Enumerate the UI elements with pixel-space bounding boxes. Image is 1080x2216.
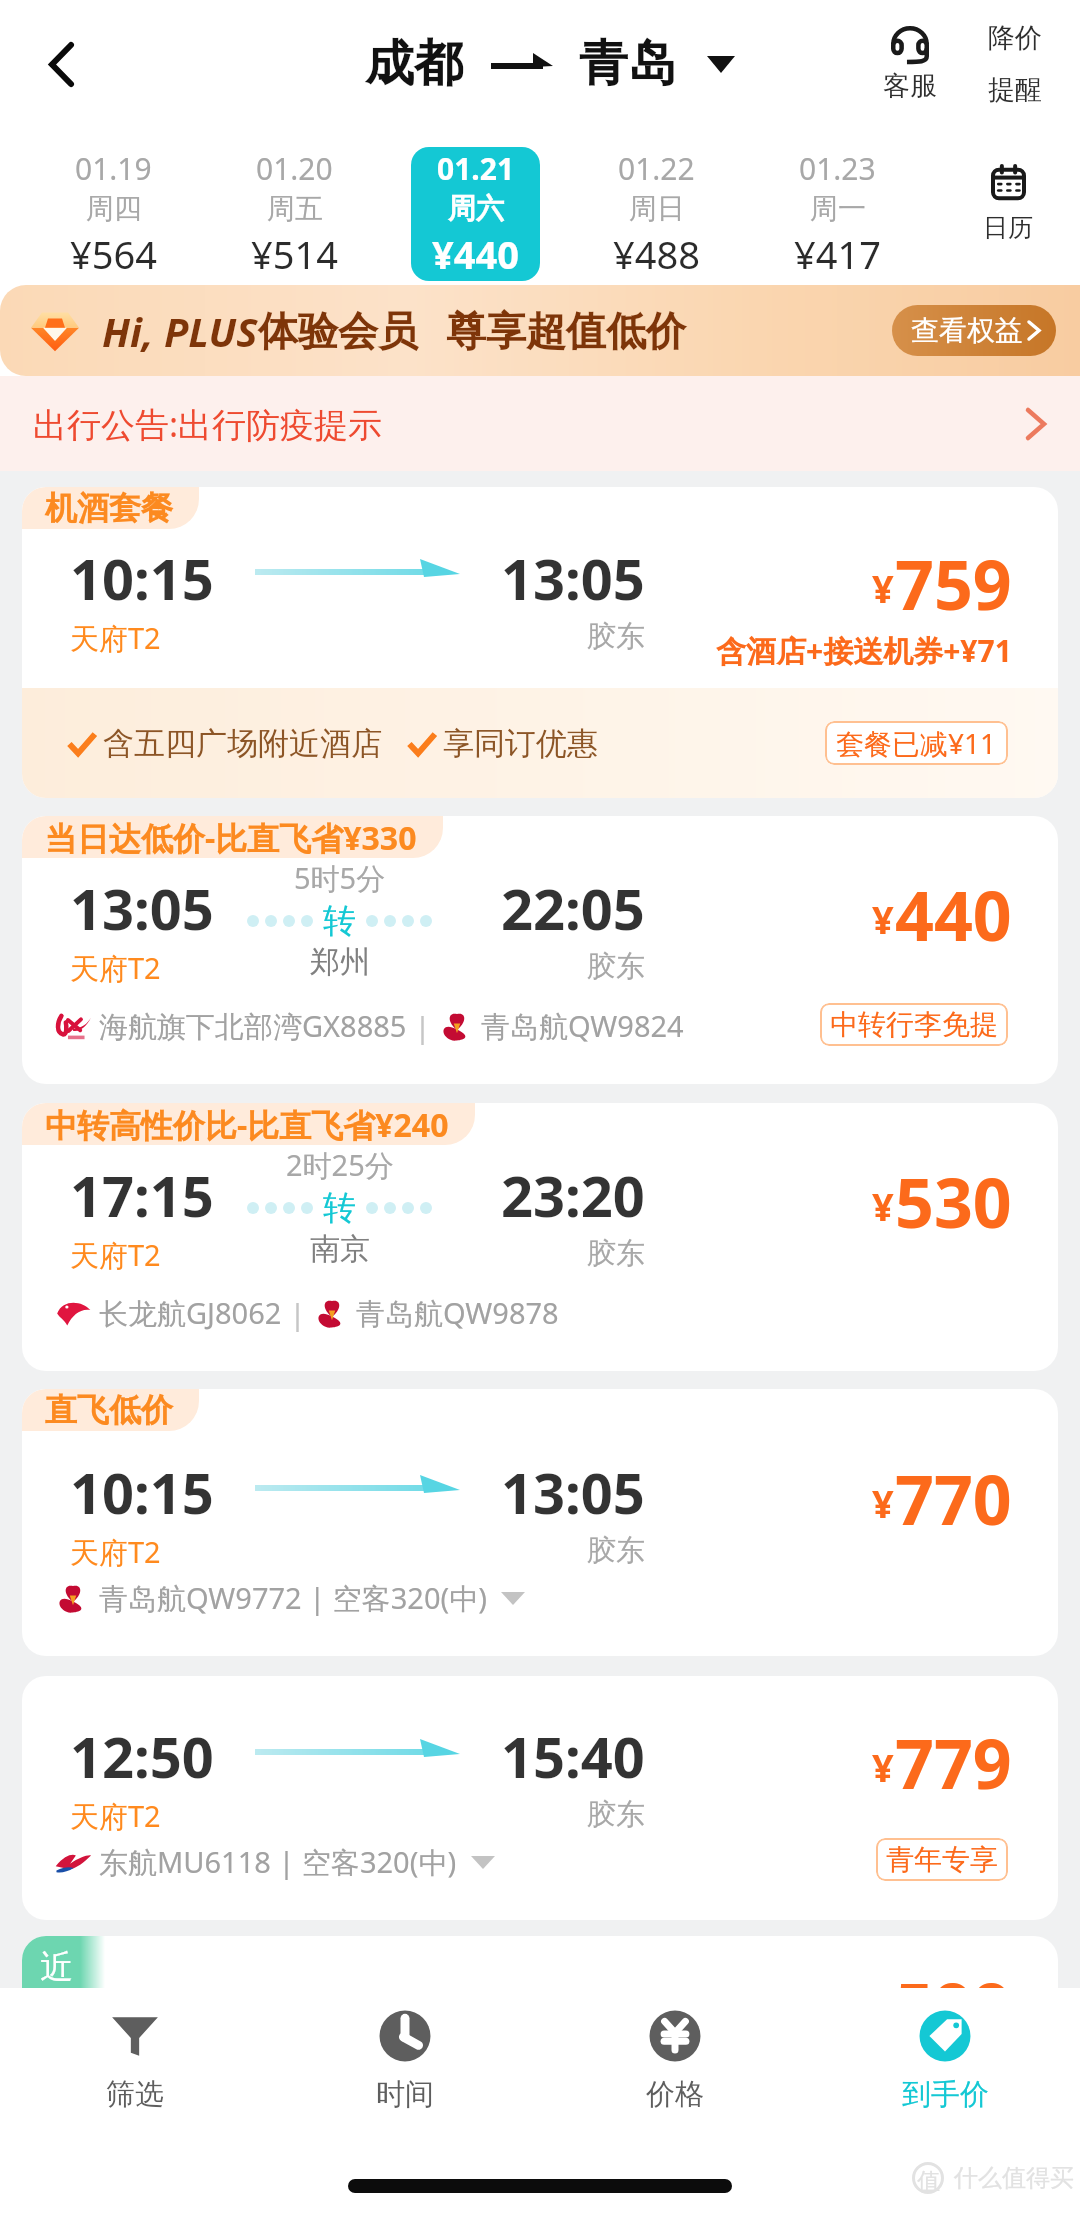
- button[interactable]: 出行公告:出行防疫提示: [0, 376, 1080, 471]
- staticText: 599: [895, 1960, 1012, 2053]
- staticText: 胶东: [587, 1235, 645, 1272]
- staticText: 筛选: [106, 2076, 164, 2113]
- button[interactable]: 价格: [540, 1988, 810, 2134]
- button[interactable]: 12:50: [22, 1676, 1058, 1920]
- staticText: ¥564: [70, 228, 157, 280]
- staticText: 13:05: [501, 1454, 645, 1530]
- staticText: 机酒套餐: [45, 488, 173, 528]
- staticText: 15:40: [501, 1718, 645, 1794]
- staticText: 转: [323, 900, 356, 942]
- staticText: 17:15: [70, 1157, 214, 1233]
- button[interactable]: 01.22: [592, 147, 721, 281]
- button[interactable]: 到手价: [810, 1988, 1080, 2134]
- staticText: 天府T2: [70, 1796, 161, 1836]
- staticText: 出行公告:出行防疫提示: [33, 401, 383, 447]
- button[interactable]: 客服: [858, 26, 962, 103]
- staticText: 10:15: [70, 540, 214, 616]
- staticText: 提醒: [988, 73, 1042, 107]
- staticText: 青岛航QW9878: [356, 1293, 559, 1333]
- button[interactable]: 成都: [365, 33, 735, 95]
- staticText: 胶东: [587, 1796, 645, 1833]
- staticText: 青岛: [579, 33, 677, 95]
- staticText: 周日: [629, 191, 685, 226]
- staticText: 胶东: [587, 1532, 645, 1569]
- staticText: 天府T2: [70, 1532, 161, 1572]
- staticText: 尊享超值低价: [446, 306, 686, 356]
- button[interactable]: 日历: [935, 128, 1080, 285]
- staticText: 时间: [376, 2076, 434, 2113]
- staticText: ¥514: [251, 228, 338, 280]
- button[interactable]: 时间: [270, 1988, 540, 2134]
- button[interactable]: 01.23: [773, 147, 902, 281]
- staticText: 530: [895, 1155, 1012, 1248]
- button[interactable]: Hi, PLUS: [0, 285, 1080, 376]
- staticText: 01.22: [618, 148, 695, 189]
- staticText: 周五: [267, 191, 323, 226]
- staticText: 23:20: [501, 1157, 645, 1233]
- staticText: 天府T2: [70, 618, 161, 658]
- staticText: 440: [895, 868, 1012, 961]
- button[interactable]: 筛选: [0, 1988, 270, 2134]
- staticText: 价格: [646, 2076, 704, 2113]
- staticText: 中转高性价比-比直飞省¥240: [45, 1103, 449, 1145]
- staticText: 胶东: [587, 618, 645, 655]
- staticText: ¥: [872, 1741, 894, 1793]
- staticText: 体验会员: [258, 306, 418, 356]
- staticText: 2时25分: [286, 1145, 394, 1185]
- button[interactable]: 01.21: [411, 147, 540, 281]
- staticText: 什么值得买: [954, 2163, 1074, 2193]
- staticText: 成都: [365, 33, 463, 95]
- staticText: 套餐已减¥11: [836, 724, 997, 762]
- staticText: 01.23: [799, 148, 876, 189]
- staticText: 海航旗下北部湾GX8885: [99, 1006, 407, 1046]
- staticText: 759: [895, 537, 1012, 630]
- staticText: 13:05: [501, 540, 645, 616]
- button[interactable]: 中转高性价比-比直飞省¥240: [22, 1103, 1058, 1371]
- staticText: 胶东: [587, 948, 645, 985]
- staticText: 22:05: [501, 870, 645, 946]
- staticText: 含酒店+接送机券+¥71: [716, 630, 1012, 671]
- staticText: 01.19: [75, 148, 152, 189]
- staticText: 周六: [448, 191, 504, 226]
- staticText: 01.20: [256, 148, 333, 189]
- staticText: 周四: [86, 191, 142, 226]
- staticText: 含五四广场附近酒店: [103, 724, 382, 763]
- staticText: 当日达低价-比直飞省¥330: [45, 816, 417, 858]
- staticText: ¥: [872, 1477, 894, 1529]
- staticText: 长龙航GJ8062: [99, 1293, 282, 1333]
- staticText: ¥: [872, 562, 894, 614]
- staticText: 转: [323, 1187, 356, 1229]
- button[interactable]: 直飞低价: [22, 1389, 1058, 1656]
- staticText: 享同订优惠: [443, 724, 598, 763]
- staticText: 青岛航QW9772 | 空客320(中): [99, 1578, 487, 1618]
- staticText: ¥488: [613, 228, 700, 280]
- staticText: 779: [895, 1716, 1012, 1809]
- staticText: 天府T2: [70, 1235, 161, 1275]
- staticText: 青岛航QW9824: [481, 1006, 684, 1046]
- button[interactable]: 01.19: [49, 147, 178, 281]
- button[interactable]: 机酒套餐: [22, 487, 1058, 798]
- button[interactable]: 当日达低价-比直飞省¥330: [22, 816, 1058, 1084]
- button[interactable]: 01.20: [230, 147, 359, 281]
- staticText: 近: [40, 1946, 73, 1988]
- staticText: ¥417: [794, 228, 881, 280]
- staticText: 10:15: [70, 1454, 214, 1530]
- staticText: ¥440: [432, 228, 519, 280]
- staticText: 12:50: [70, 1718, 214, 1794]
- button[interactable]: Back: [17, 20, 105, 108]
- staticText: 查看权益: [911, 313, 1023, 348]
- staticText: 770: [895, 1452, 1012, 1545]
- staticText: 客服: [883, 69, 937, 103]
- button[interactable]: 降价: [962, 21, 1068, 107]
- staticText: Hi, PLUS: [102, 304, 258, 358]
- staticText: 南京: [310, 1230, 370, 1268]
- staticText: |: [407, 1007, 439, 1046]
- button[interactable]: 查看权益: [892, 305, 1056, 356]
- staticText: 郑州: [310, 943, 370, 981]
- staticText: 天府T2: [70, 948, 161, 988]
- staticText: 值: [917, 2167, 940, 2196]
- staticText: ¥: [872, 1180, 894, 1232]
- staticText: 直飞低价: [45, 1390, 173, 1430]
- staticText: 13:05: [70, 870, 214, 946]
